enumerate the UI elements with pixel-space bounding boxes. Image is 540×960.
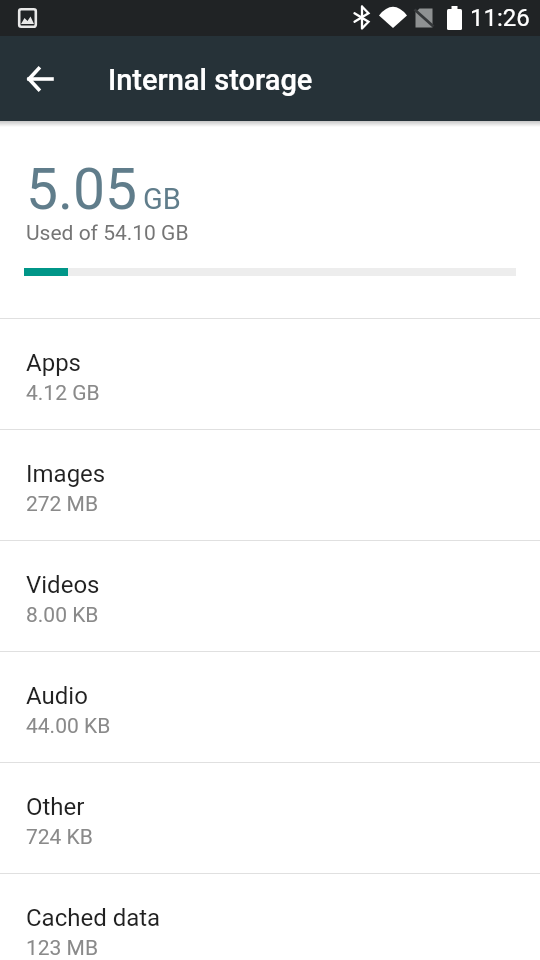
staticText: Internal storage: [108, 63, 313, 97]
staticText: 272 MB: [26, 492, 99, 517]
staticText: 724 KB: [26, 825, 93, 850]
staticText: 44.00 KB: [26, 714, 111, 739]
button[interactable]: Images: [0, 430, 540, 540]
staticText: Used of 54.10 GB: [26, 221, 189, 246]
staticText: GB: [143, 182, 181, 216]
staticText: Apps: [26, 349, 81, 377]
staticText: Videos: [26, 571, 100, 599]
staticText: 11:26: [470, 4, 530, 32]
staticText: Images: [26, 460, 106, 488]
staticText: 5.05: [26, 156, 138, 223]
staticText: 4.12 GB: [26, 381, 100, 406]
staticText: Audio: [26, 682, 88, 710]
button[interactable]: Cached data: [0, 874, 540, 960]
staticText: 123 MB: [26, 936, 99, 960]
button[interactable]: Other: [0, 763, 540, 873]
button[interactable]: Videos: [0, 541, 540, 651]
button[interactable]: Audio: [0, 652, 540, 762]
button[interactable]: Apps: [0, 319, 540, 429]
staticText: Cached data: [26, 904, 161, 932]
staticText: Other: [26, 793, 85, 821]
button[interactable]: [16, 55, 64, 103]
staticText: 8.00 KB: [26, 603, 99, 628]
